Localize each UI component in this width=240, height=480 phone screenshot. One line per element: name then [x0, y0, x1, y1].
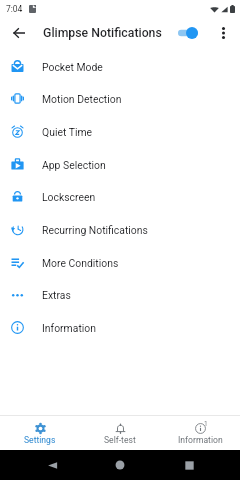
button[interactable]: More options: [211, 21, 235, 45]
staticText: Glimpse Notifications: [43, 26, 162, 40]
staticText: Settings: [24, 435, 56, 445]
button[interactable]: Settings: [0, 415, 80, 450]
staticText: Self-test: [104, 435, 136, 445]
staticText: More Conditions: [42, 257, 119, 269]
button[interactable]: Recurring Notifications: [0, 213, 240, 246]
button[interactable]: Extras: [0, 278, 240, 311]
staticText: Extras: [42, 289, 71, 301]
staticText: Quiet Time: [42, 126, 93, 138]
staticText: 1: [204, 420, 208, 428]
button[interactable]: More Conditions: [0, 246, 240, 279]
button[interactable]: Back: [7, 21, 31, 45]
button[interactable]: Pocket Mode: [0, 50, 240, 83]
button[interactable]: App Selection: [0, 148, 240, 181]
staticText: Recurring Notifications: [42, 224, 148, 236]
button[interactable]: Motion Detection: [0, 82, 240, 115]
staticText: Pocket Mode: [42, 61, 103, 73]
staticText: Information: [178, 435, 223, 445]
staticText: 7:04: [6, 4, 23, 14]
staticText: Lockscreen: [42, 191, 96, 203]
staticText: Information: [42, 322, 96, 334]
button[interactable]: Toggle notifications: [175, 21, 201, 45]
staticText: App Selection: [42, 159, 106, 171]
button[interactable]: Self-test: [80, 415, 160, 450]
button[interactable]: Quiet Time: [0, 115, 240, 148]
button[interactable]: Lockscreen: [0, 180, 240, 213]
button[interactable]: Information: [0, 311, 240, 344]
button[interactable]: 1: [160, 415, 240, 450]
staticText: Motion Detection: [42, 93, 122, 105]
